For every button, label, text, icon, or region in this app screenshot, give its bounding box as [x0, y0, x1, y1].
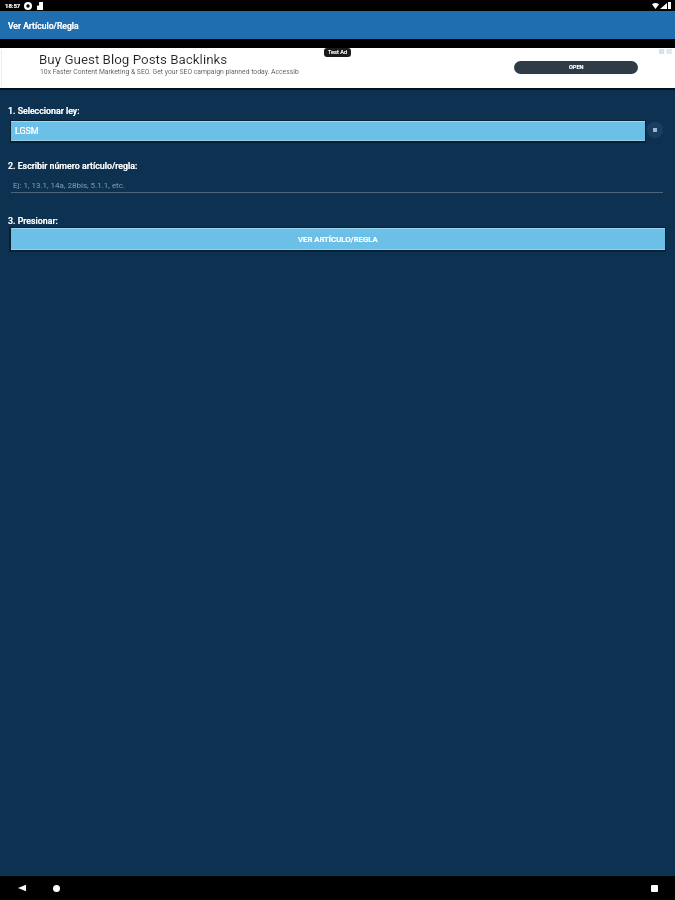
staticText: LGSM — [15, 126, 39, 136]
staticText: Buy Guest Blog Posts Backlinks — [39, 52, 228, 68]
staticText: Test Ad — [328, 49, 347, 56]
button[interactable]: LGSM — [11, 121, 645, 141]
button[interactable]: Ver Artículo/Regla — [0, 11, 675, 39]
button[interactable]: OPEN — [514, 61, 638, 74]
staticText: Ej: 1, 13.1, 14a, 28bis, 5.1.1, etc. — [13, 181, 126, 190]
button[interactable]: Ayuda — [647, 122, 663, 138]
button[interactable]: Home — [46, 878, 66, 898]
button[interactable]: Buy Guest Blog Posts Backlinks — [0, 48, 675, 88]
staticText: OPEN — [569, 64, 584, 71]
staticText: 3. Presionar: — [8, 216, 58, 226]
staticText: 1. Seleccionar ley: — [8, 106, 80, 116]
button[interactable]: Back — [12, 878, 32, 898]
staticText: VER ARTÍCULO/REGLA — [298, 235, 378, 244]
staticText: Ver Artículo/Regla — [8, 21, 79, 31]
staticText: 2. Escribir número artículo/regla: — [8, 161, 138, 171]
staticText: 18:57 — [5, 2, 21, 9]
button[interactable]: Recents — [644, 878, 664, 898]
staticText: 10x Faster Content Marketing & SEO. Get … — [40, 68, 299, 76]
button[interactable]: VER ARTÍCULO/REGLA — [11, 228, 665, 250]
